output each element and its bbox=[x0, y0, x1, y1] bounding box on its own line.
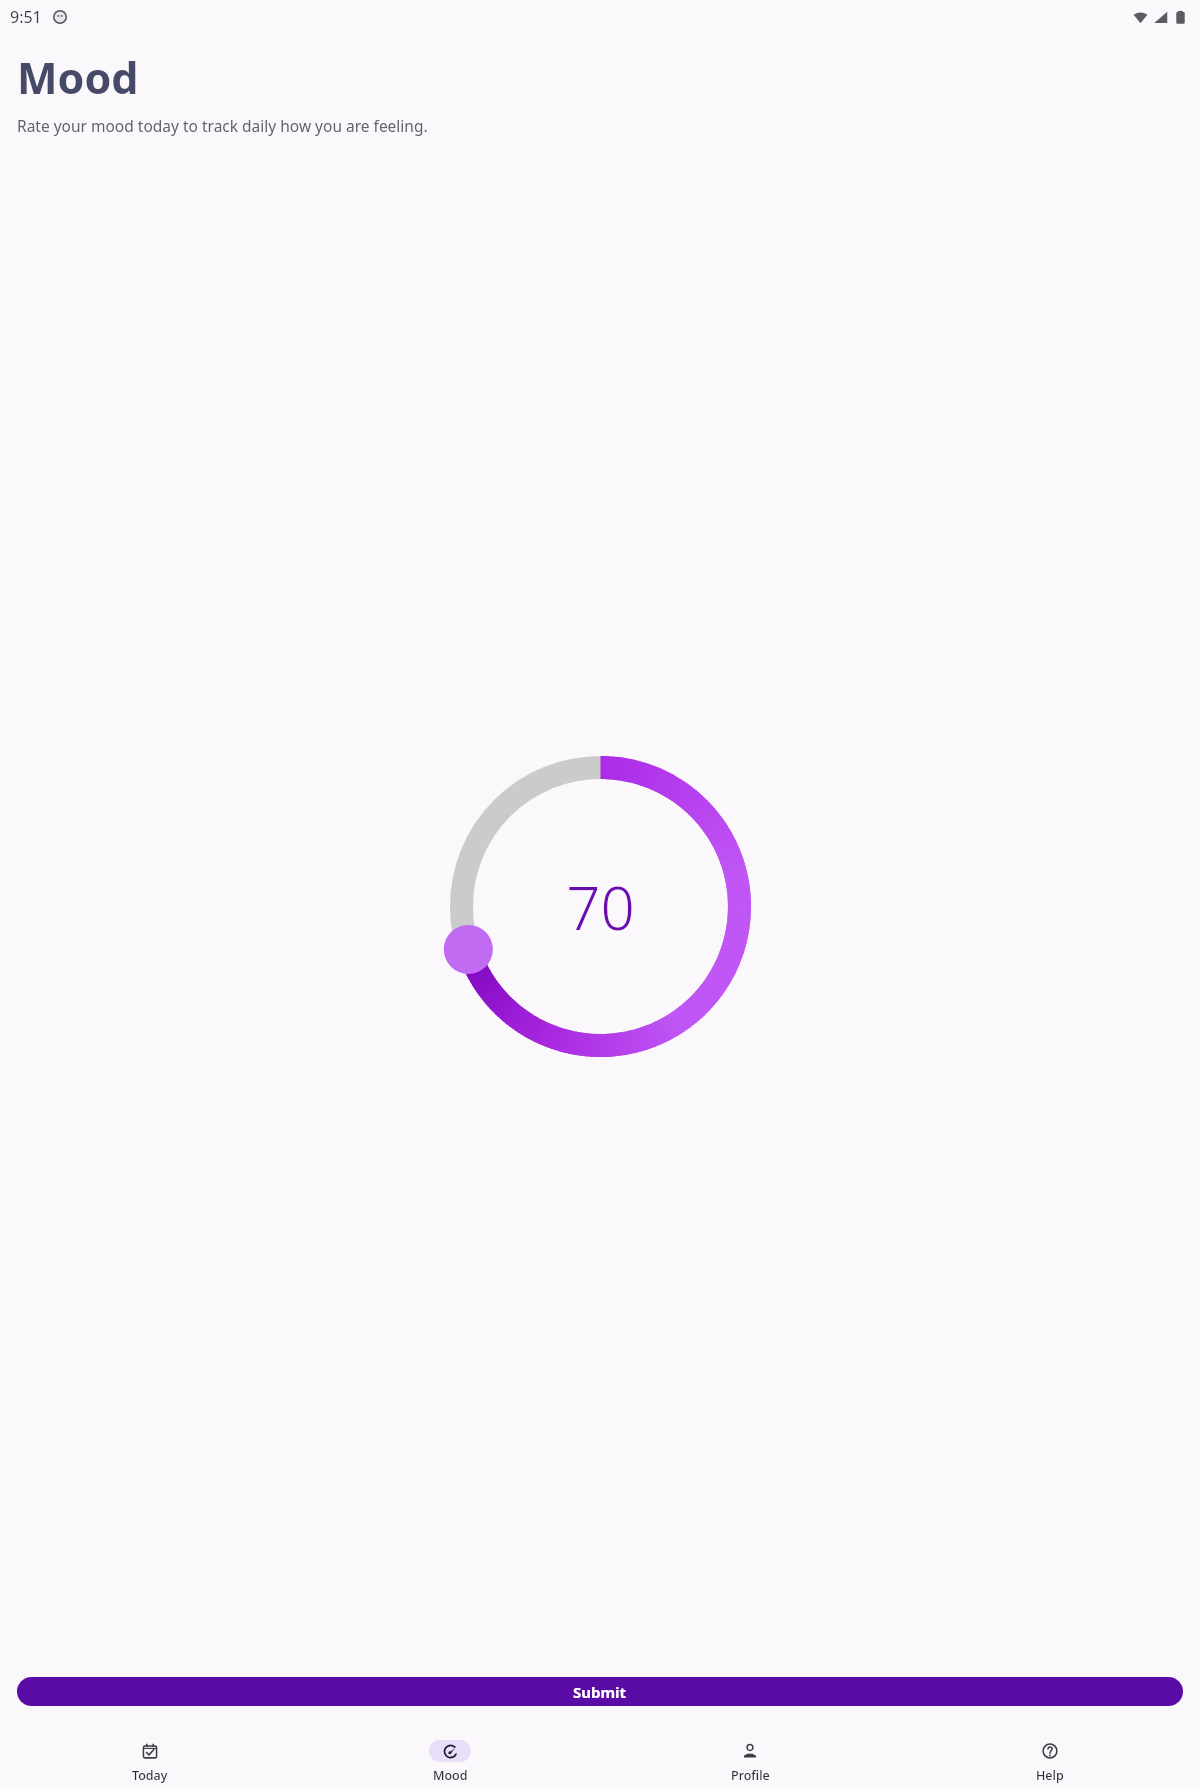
button[interactable]: Today bbox=[0, 1740, 300, 1783]
staticText: Submit bbox=[573, 1682, 627, 1702]
button[interactable]: Profile bbox=[600, 1740, 900, 1783]
staticText: Rate your mood today to track daily how … bbox=[17, 115, 428, 136]
staticText: Today bbox=[132, 1767, 168, 1783]
staticText: 70 bbox=[566, 866, 635, 948]
staticText: 9:51 bbox=[10, 6, 42, 28]
staticText: Mood bbox=[17, 48, 139, 107]
staticText: Help bbox=[1036, 1767, 1064, 1783]
staticText: Profile bbox=[731, 1767, 770, 1783]
staticText: Mood bbox=[433, 1767, 468, 1783]
button[interactable]: Mood bbox=[300, 1740, 600, 1783]
button[interactable]: Help bbox=[900, 1740, 1200, 1783]
button[interactable]: Submit bbox=[17, 1677, 1183, 1706]
other: Mood level 70 bbox=[450, 756, 751, 1057]
